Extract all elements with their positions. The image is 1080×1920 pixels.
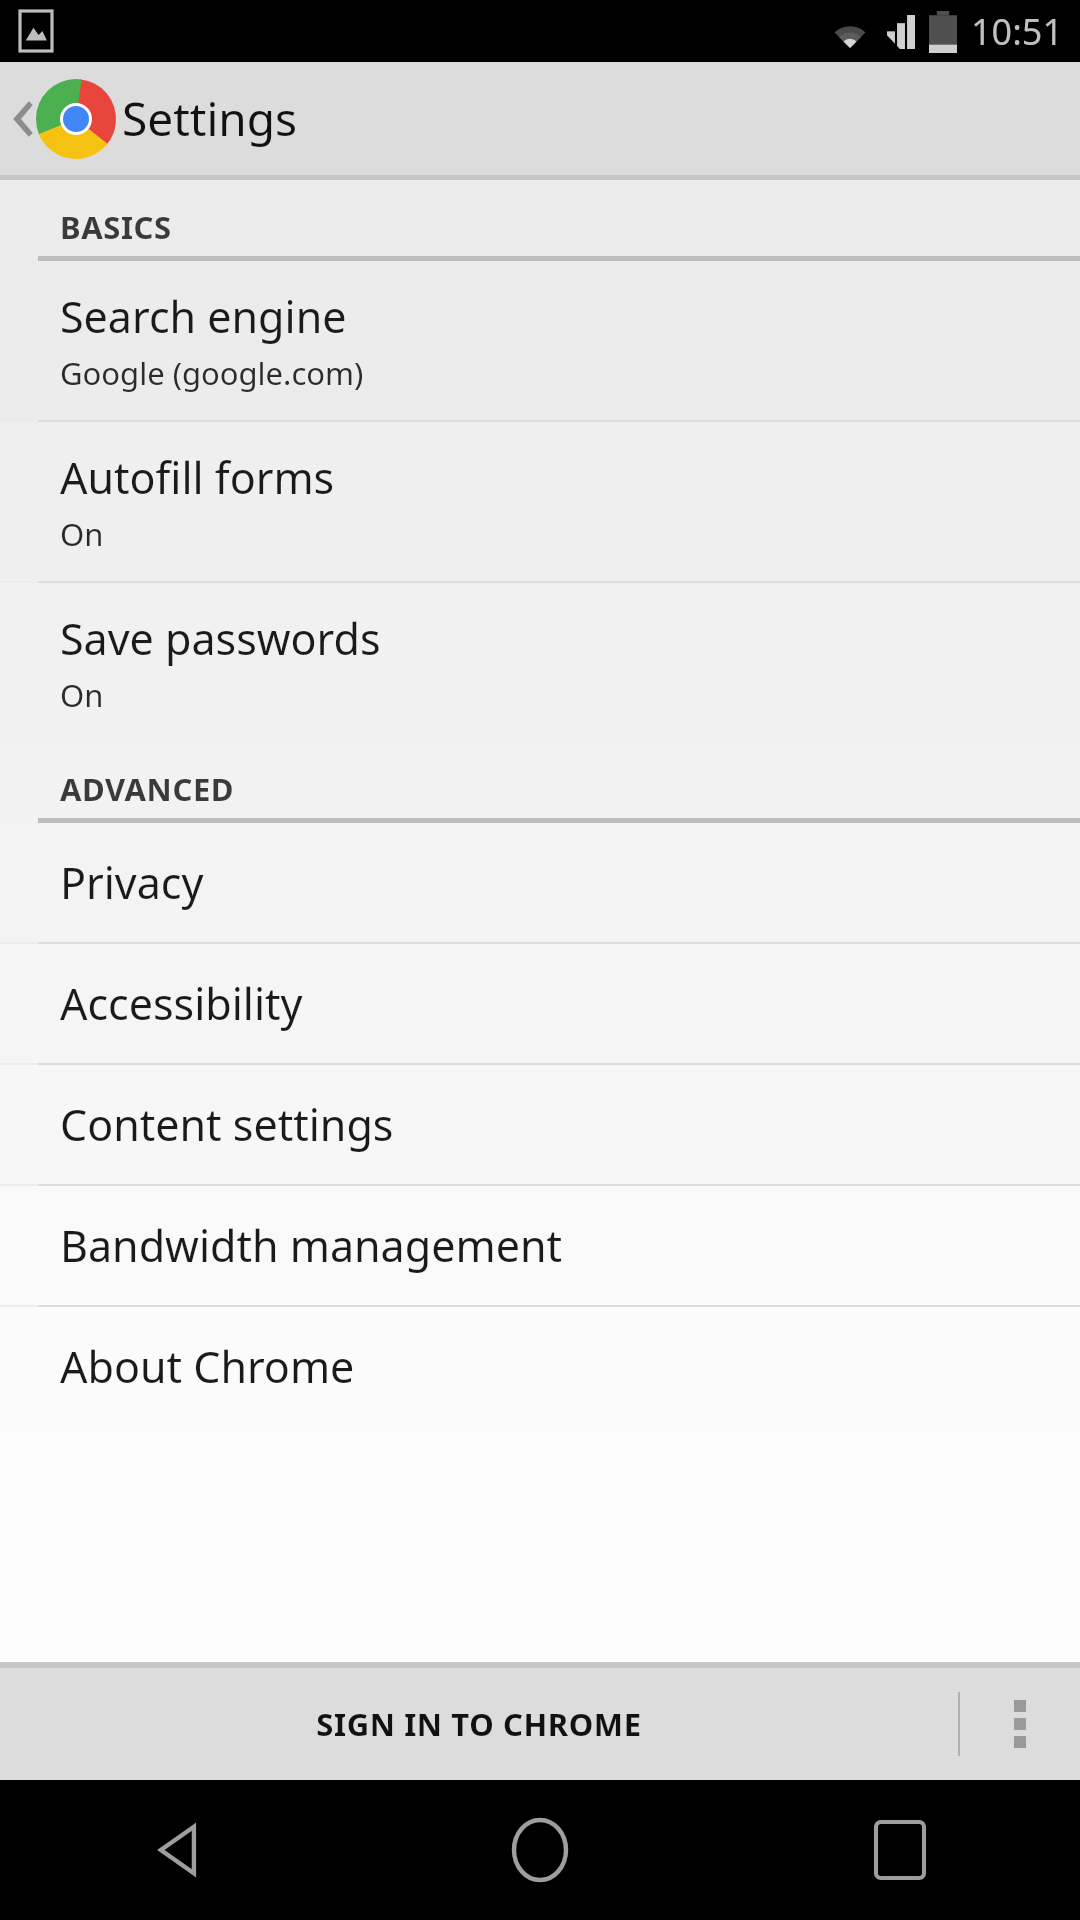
staticText: Autofill forms [60, 448, 335, 507]
staticText: Settings [122, 87, 298, 150]
button[interactable]: Navigate up [0, 69, 126, 169]
staticText: ADVANCED [60, 768, 235, 810]
button[interactable]: Search engine [0, 261, 1080, 420]
button[interactable]: Content settings [0, 1065, 1080, 1184]
button[interactable]: About Chrome [0, 1307, 1080, 1426]
staticText: On [60, 674, 104, 716]
button[interactable]: Accessibility [0, 944, 1080, 1063]
button[interactable]: Privacy [0, 823, 1080, 942]
button[interactable]: Bandwidth management [0, 1186, 1080, 1305]
button[interactable]: SIGN IN TO CHROME [0, 1668, 958, 1780]
staticText: SIGN IN TO CHROME [316, 1703, 642, 1745]
staticText: Privacy [60, 853, 204, 912]
staticText: Google (google.com) [60, 352, 364, 394]
staticText: Save passwords [60, 609, 381, 668]
button[interactable]: More options [960, 1668, 1080, 1780]
staticText: Accessibility [60, 974, 303, 1033]
staticText: On [60, 513, 104, 555]
button[interactable]: Home [360, 1780, 720, 1920]
staticText: 10:51 [971, 7, 1064, 56]
button[interactable]: Back [0, 1780, 360, 1920]
button[interactable]: Save passwords [0, 583, 1080, 742]
staticText: BASICS [60, 206, 172, 248]
button[interactable]: Autofill forms [0, 422, 1080, 581]
staticText: Content settings [60, 1095, 394, 1154]
staticText: About Chrome [60, 1337, 355, 1396]
staticText: Bandwidth management [60, 1216, 562, 1275]
staticText: Search engine [60, 287, 347, 346]
button[interactable]: Recent apps [720, 1780, 1080, 1920]
